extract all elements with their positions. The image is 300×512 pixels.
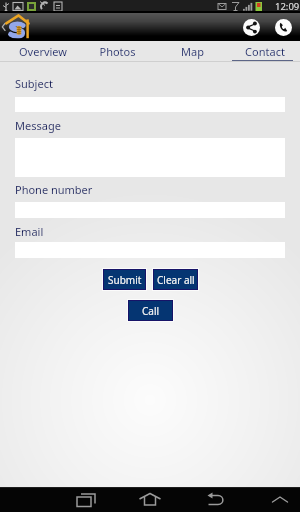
button[interactable]: Back (200, 487, 232, 512)
button[interactable]: Call (129, 301, 172, 320)
staticText: Submit (108, 273, 142, 287)
staticText: Photos (99, 44, 136, 59)
button[interactable]: Map (155, 41, 230, 62)
button[interactable]: Navigate up (0, 13, 36, 41)
button[interactable]: Recent apps (70, 487, 102, 512)
staticText: Phone number (15, 182, 93, 197)
staticText: 12:09 (275, 0, 300, 13)
staticText: Map (181, 44, 204, 59)
button[interactable]: Home (134, 487, 166, 512)
button[interactable]: Call (275, 19, 292, 36)
button[interactable]: Show menu (264, 487, 296, 512)
button[interactable]: Share (243, 19, 260, 36)
staticText: Message (15, 118, 61, 133)
staticText: Contact (245, 44, 285, 59)
staticText: Subject (15, 76, 53, 91)
button[interactable]: Clear all (154, 270, 197, 289)
staticText: Clear all (157, 273, 195, 287)
staticText: Call (142, 304, 160, 318)
staticText: Overview (19, 44, 67, 59)
button[interactable]: Overview (5, 41, 80, 62)
button[interactable]: Contact (230, 41, 300, 62)
staticText: Email (15, 224, 44, 239)
button[interactable]: Submit (104, 270, 145, 289)
button[interactable]: Photos (80, 41, 155, 62)
